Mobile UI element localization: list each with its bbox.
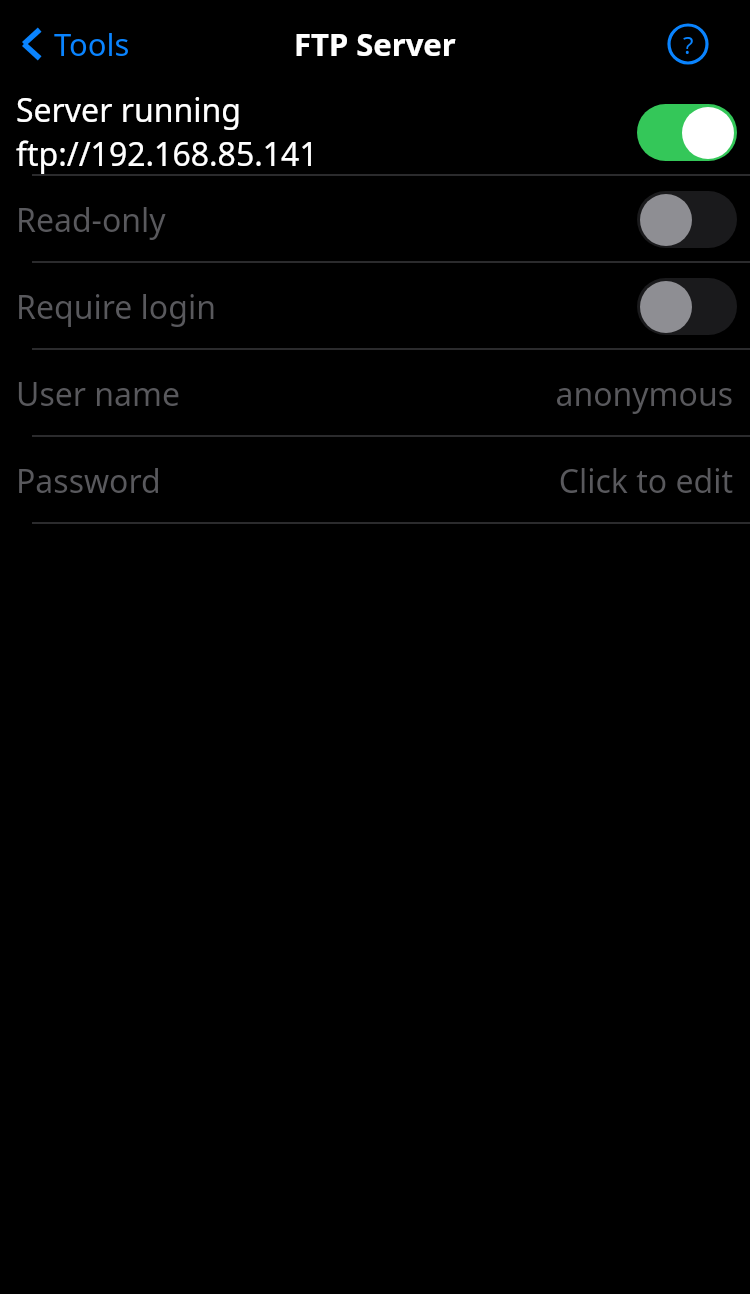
staticText: Require login	[16, 285, 216, 329]
button[interactable]: User name	[0, 350, 750, 437]
staticText: Password	[16, 459, 161, 503]
button[interactable]	[637, 278, 737, 335]
staticText: Server running	[16, 88, 241, 132]
button[interactable]	[637, 104, 737, 161]
button[interactable]: Read-only	[0, 176, 750, 263]
button[interactable]	[637, 191, 737, 248]
staticText: ftp://192.168.85.141	[16, 132, 318, 176]
staticText: FTP Server	[294, 23, 456, 65]
staticText: User name	[16, 372, 181, 416]
staticText: anonymous	[555, 372, 733, 416]
staticText: Tools	[54, 23, 130, 65]
staticText: ?	[683, 28, 694, 61]
button[interactable]: Help	[666, 22, 710, 66]
button[interactable]: Tools	[12, 15, 138, 73]
staticText: Read-only	[16, 198, 166, 242]
button[interactable]: Password	[0, 437, 750, 524]
staticText: Click to edit	[558, 459, 733, 503]
button[interactable]: Require login	[0, 263, 750, 350]
